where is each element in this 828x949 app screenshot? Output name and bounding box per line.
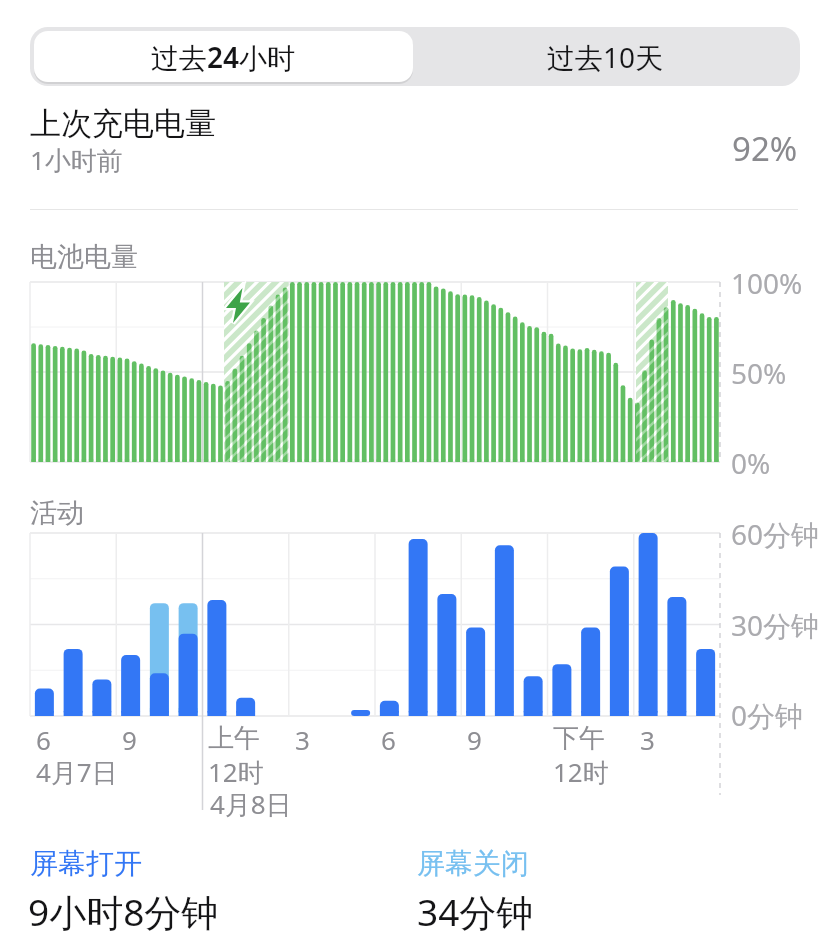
staticText: 9 <box>467 722 482 757</box>
staticText: 0% <box>731 444 771 482</box>
staticText: 12时 <box>553 754 609 790</box>
staticText: 3 <box>640 722 655 757</box>
staticText: 6 <box>36 722 51 757</box>
staticText: 6 <box>381 722 396 757</box>
staticText: 3 <box>295 722 310 757</box>
staticText: 12时 <box>208 754 264 790</box>
staticText: 上午 <box>208 722 260 755</box>
staticText: 92% <box>732 126 798 170</box>
staticText: 30分钟 <box>731 606 820 644</box>
staticText: 100% <box>731 264 803 302</box>
staticText: 9小时8分钟 <box>28 886 219 937</box>
staticText: 0分钟 <box>731 696 804 734</box>
staticText: 60分钟 <box>731 515 820 553</box>
button[interactable]: 过去24小时 <box>34 31 413 82</box>
staticText: 过去24小时 <box>151 38 296 76</box>
staticText: 50% <box>731 354 787 392</box>
staticText: 9 <box>122 722 137 757</box>
staticText: 电池电量 <box>30 240 138 274</box>
staticText: 屏幕关闭 <box>417 846 529 881</box>
staticText: 下午 <box>553 722 605 755</box>
staticText: 过去10天 <box>547 38 664 76</box>
staticText: 屏幕打开 <box>30 846 142 881</box>
staticText: 1小时前 <box>30 142 123 178</box>
staticText: 4月7日 <box>36 754 118 790</box>
staticText: 上次充电电量 <box>30 104 216 143</box>
staticText: 4月8日 <box>210 786 292 822</box>
staticText: 活动 <box>30 496 84 530</box>
staticText: 34分钟 <box>417 886 534 937</box>
button[interactable]: 过去10天 <box>413 31 798 82</box>
